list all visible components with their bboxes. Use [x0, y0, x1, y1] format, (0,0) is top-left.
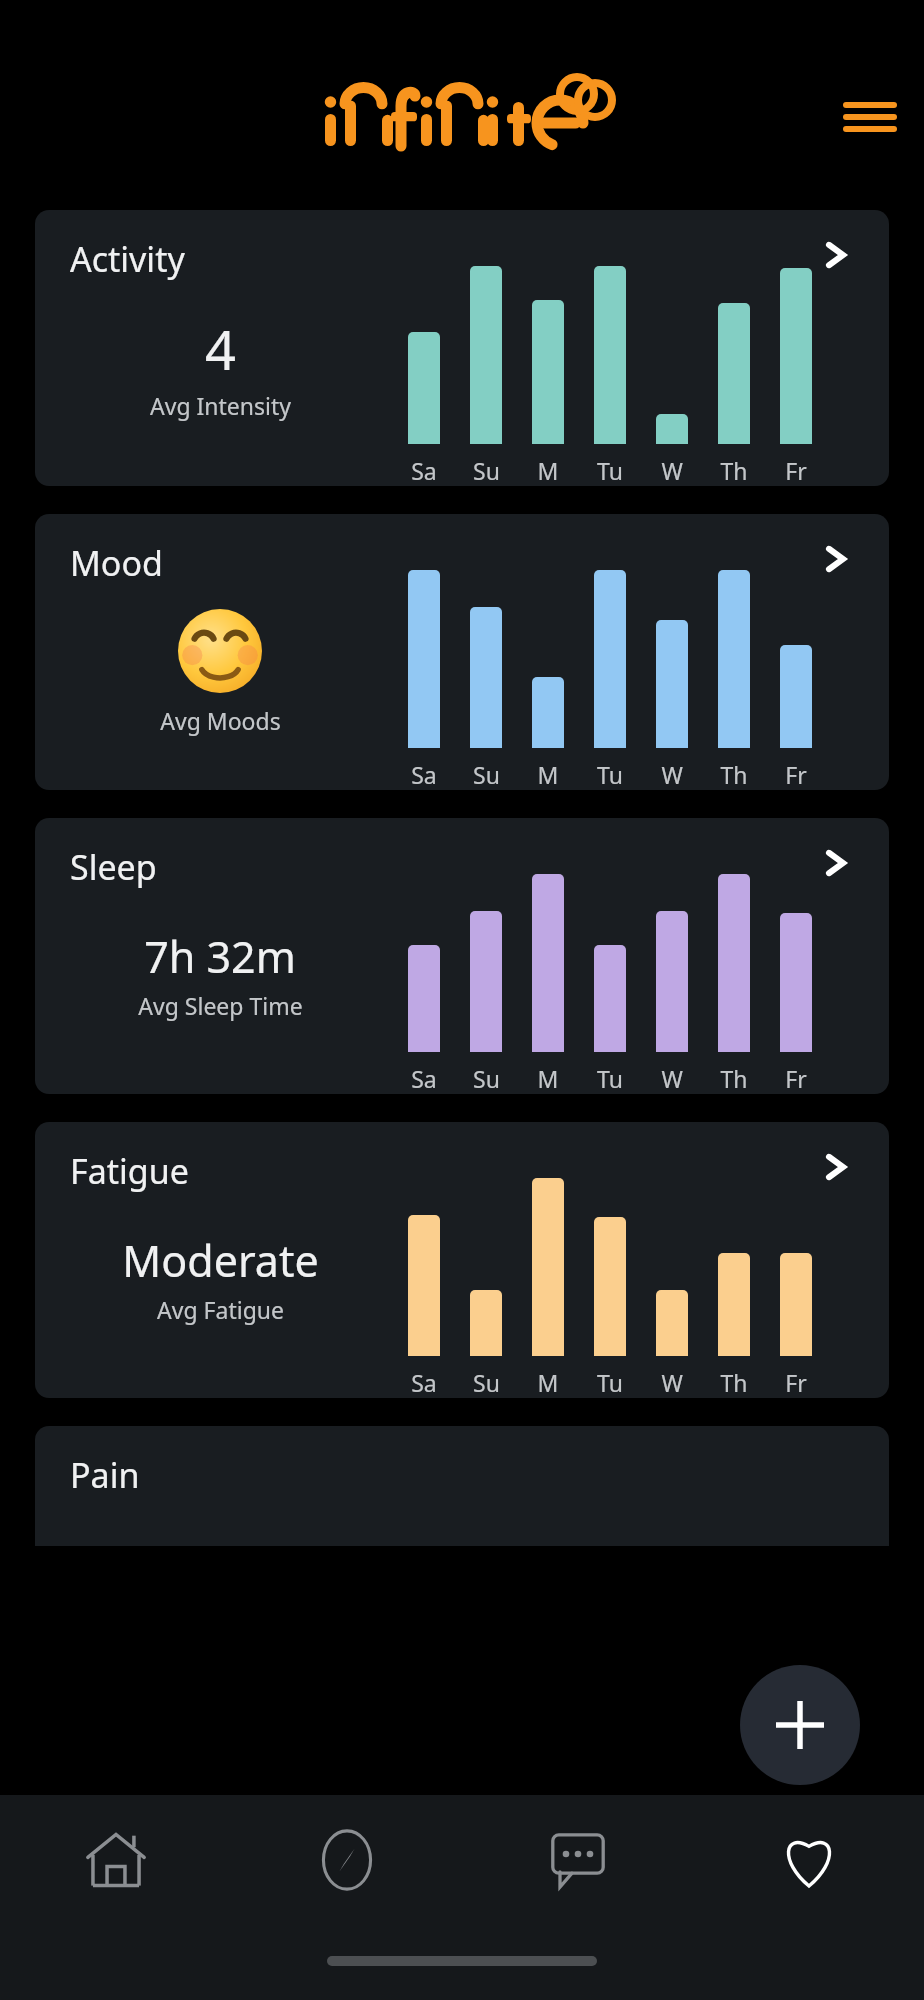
- staticText: Su: [473, 455, 500, 486]
- staticText: Pain: [70, 1452, 140, 1498]
- button[interactable]: Activity: [35, 210, 889, 486]
- staticText: Tu: [597, 759, 623, 790]
- button[interactable]: Messages: [462, 1795, 693, 1925]
- staticText: Sa: [411, 455, 437, 486]
- staticText: We: [656, 759, 688, 790]
- button[interactable]: Home: [0, 1795, 231, 1925]
- button[interactable]: Mood: [35, 514, 889, 790]
- staticText: Mo: [532, 1367, 564, 1398]
- button[interactable]: Add entry: [740, 1665, 860, 1785]
- staticText: Su: [473, 759, 500, 790]
- staticText: Fr: [785, 1063, 807, 1094]
- staticText: Tu: [597, 1063, 623, 1094]
- staticText: Avg Intensity: [150, 390, 291, 421]
- button[interactable]: Explore: [231, 1795, 462, 1925]
- staticText: 7h 32m: [144, 927, 296, 986]
- staticText: Sa: [411, 1063, 437, 1094]
- staticText: Avg Fatigue: [157, 1294, 284, 1325]
- staticText: Su: [473, 1367, 500, 1398]
- staticText: Sa: [411, 1367, 437, 1398]
- button[interactable]: Sleep details: [813, 840, 859, 886]
- staticText: Moderate: [122, 1231, 319, 1290]
- staticText: We: [656, 455, 688, 486]
- button[interactable]: Activity details: [813, 232, 859, 278]
- staticText: Sleep: [70, 844, 157, 890]
- staticText: We: [656, 1063, 688, 1094]
- button[interactable]: Mood details: [813, 536, 859, 582]
- staticText: Su: [473, 1063, 500, 1094]
- staticText: Mood: [70, 540, 163, 586]
- staticText: Mo: [532, 455, 564, 486]
- button[interactable]: Menu: [834, 81, 906, 153]
- staticText: Tu: [597, 1367, 623, 1398]
- button[interactable]: Pain: [35, 1426, 889, 1546]
- staticText: Tu: [597, 455, 623, 486]
- button[interactable]: Fatigue details: [813, 1144, 859, 1190]
- staticText: Th: [720, 759, 748, 790]
- button[interactable]: Fatigue: [35, 1122, 889, 1398]
- staticText: Fr: [785, 759, 807, 790]
- button[interactable]: Sleep: [35, 818, 889, 1094]
- staticText: Activity: [70, 236, 185, 282]
- staticText: Fr: [785, 1367, 807, 1398]
- button[interactable]: Health: [693, 1795, 924, 1925]
- staticText: Avg Sleep Time: [138, 990, 303, 1021]
- staticText: Mo: [532, 1063, 564, 1094]
- staticText: 4: [205, 312, 236, 386]
- staticText: Avg Moods: [160, 705, 281, 736]
- staticText: Mo: [532, 759, 564, 790]
- staticText: Fatigue: [70, 1148, 189, 1194]
- staticText: Th: [720, 1367, 748, 1398]
- staticText: Th: [720, 1063, 748, 1094]
- staticText: Th: [720, 455, 748, 486]
- staticText: We: [656, 1367, 688, 1398]
- staticText: Sa: [411, 759, 437, 790]
- staticText: Fr: [785, 455, 807, 486]
